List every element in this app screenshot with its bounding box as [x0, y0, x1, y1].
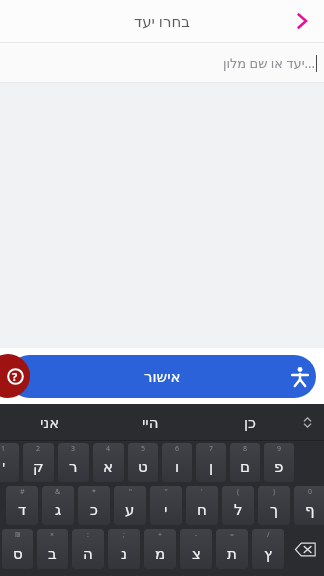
- button[interactable]: +: [144, 529, 176, 569]
- staticText: ך: [270, 501, 279, 518]
- staticText: י: [164, 501, 168, 518]
- staticText: היי: [142, 414, 159, 431]
- staticText: (: [237, 487, 240, 497]
- staticText: פ: [274, 458, 284, 475]
- staticText: #: [20, 487, 25, 497]
- button[interactable]: =: [216, 529, 248, 569]
- button[interactable]: 7: [196, 443, 226, 482]
- button[interactable]: Expand suggestions: [295, 410, 319, 434]
- staticText: נ: [121, 545, 128, 562]
- button[interactable]: 1: [0, 443, 19, 482]
- button[interactable]: אישור: [8, 355, 316, 398]
- button[interactable]: 2: [23, 443, 54, 482]
- staticText: 1: [1, 444, 6, 454]
- staticText: כ: [90, 501, 98, 518]
- staticText: 2: [36, 444, 41, 454]
- button[interactable]: (: [222, 486, 254, 525]
- staticText: ב: [48, 545, 57, 562]
- staticText: *: [92, 487, 96, 497]
- staticText: ×: [50, 530, 55, 540]
- staticText: צ: [192, 545, 201, 562]
- button[interactable]: #: [6, 486, 38, 525]
- staticText: מ: [155, 545, 166, 562]
- staticText: ן: [209, 458, 214, 475]
- button[interactable]: Backspace: [286, 527, 324, 571]
- button[interactable]: *: [78, 486, 110, 525]
- button[interactable]: ”: [150, 486, 182, 525]
- staticText: +: [158, 530, 163, 540]
- staticText: =: [230, 530, 235, 540]
- staticText: ': [2, 457, 6, 477]
- staticText: ף: [305, 501, 315, 518]
- staticText: ל: [234, 501, 243, 518]
- staticText: /: [267, 530, 270, 540]
- staticText: ת: [227, 545, 237, 562]
- button[interactable]: 6: [162, 443, 192, 482]
- staticText: ;: [123, 530, 125, 540]
- staticText: &: [55, 487, 61, 497]
- button[interactable]: -: [180, 529, 212, 569]
- staticText: ": [129, 487, 132, 497]
- button[interactable]: 5: [128, 443, 158, 482]
- staticText: 9: [277, 444, 282, 454]
- staticText: ד: [18, 501, 27, 518]
- button[interactable]: היי: [100, 404, 200, 440]
- button[interactable]: אני: [0, 404, 100, 440]
- staticText: 4: [106, 444, 111, 454]
- staticText: ג: [55, 501, 62, 518]
- staticText: ם: [240, 458, 250, 475]
- staticText: א: [103, 458, 114, 475]
- staticText: ס: [13, 545, 23, 562]
- staticText: 8: [243, 444, 248, 454]
- staticText: כן: [244, 414, 257, 431]
- staticText: ע: [125, 501, 135, 518]
- staticText: ר: [69, 458, 78, 475]
- button[interactable]: ;: [108, 529, 140, 569]
- button[interactable]: &: [42, 486, 74, 525]
- button[interactable]: כן: [200, 404, 300, 440]
- button[interactable]: ': [186, 486, 218, 525]
- staticText: 0: [308, 487, 313, 497]
- button[interactable]: Help: [0, 354, 30, 398]
- staticText: ח: [197, 501, 207, 518]
- staticText: ): [273, 487, 276, 497]
- staticText: ט: [138, 458, 148, 475]
- button[interactable]: :: [72, 529, 104, 569]
- staticText: ו: [175, 458, 180, 475]
- button[interactable]: ×: [37, 529, 68, 569]
- staticText: 5: [141, 444, 146, 454]
- button[interactable]: יעד או שם מלון...: [0, 43, 324, 82]
- staticText: ': [201, 487, 203, 497]
- staticText: ץ: [264, 545, 273, 562]
- staticText: :: [87, 530, 89, 540]
- button[interactable]: 3: [58, 443, 89, 482]
- staticText: אישור: [144, 368, 181, 385]
- button[interactable]: 4: [93, 443, 124, 482]
- staticText: אני: [40, 414, 60, 431]
- staticText: ₪: [15, 530, 21, 540]
- other: Accessibility: [287, 364, 313, 390]
- button[interactable]: ): [258, 486, 290, 525]
- staticText: ”: [165, 487, 168, 497]
- button[interactable]: 0: [294, 486, 324, 525]
- button[interactable]: ₪: [2, 529, 33, 569]
- staticText: -: [195, 530, 198, 540]
- button[interactable]: Next: [284, 3, 320, 39]
- staticText: ה: [83, 545, 93, 562]
- button[interactable]: 8: [230, 443, 260, 482]
- staticText: בחרו יעד: [134, 11, 190, 31]
- button[interactable]: /: [252, 529, 284, 569]
- staticText: 3: [71, 444, 76, 454]
- staticText: 7: [209, 444, 214, 454]
- button[interactable]: 9: [264, 443, 294, 482]
- staticText: 6: [175, 444, 180, 454]
- staticText: ק: [33, 458, 44, 475]
- button[interactable]: ": [114, 486, 146, 525]
- staticText: ?: [12, 369, 18, 384]
- staticText: יעד או שם מלון...: [222, 54, 315, 72]
